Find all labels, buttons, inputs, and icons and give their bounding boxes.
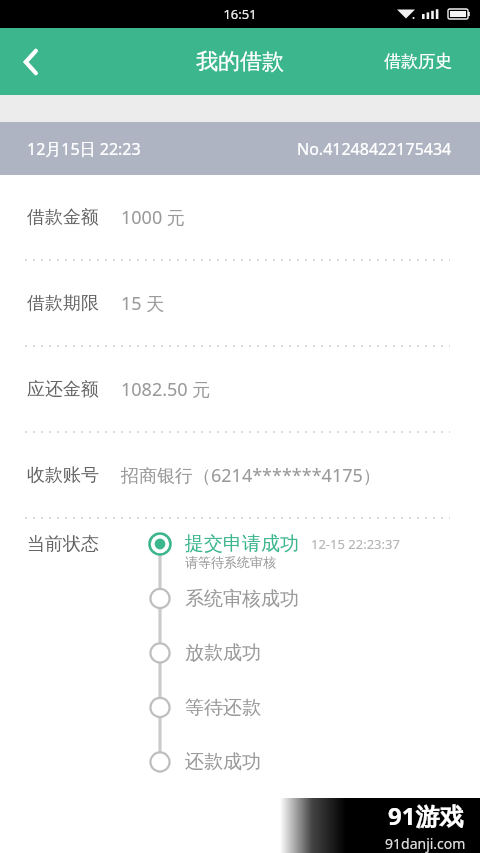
button[interactable]: 借款期限 xyxy=(0,261,480,347)
staticText: 1082.50 元 xyxy=(121,377,211,402)
staticText: 等待还款 xyxy=(185,696,261,720)
staticText: 请等待系统审核 xyxy=(185,554,276,570)
staticText: No.41248422175434 xyxy=(297,138,452,160)
button[interactable]: 系统审核成功 xyxy=(185,584,299,614)
staticText: 放款成功 xyxy=(185,641,261,665)
button[interactable]: 应还金额 xyxy=(0,347,480,433)
staticText: 16:51 xyxy=(223,5,257,23)
button[interactable]: Back xyxy=(0,28,62,95)
staticText: 提交申请成功 xyxy=(185,532,299,556)
staticText: 借款金额 xyxy=(27,206,99,229)
button[interactable]: 还款成功 xyxy=(185,747,261,777)
staticText: 12月15日 22:23 xyxy=(27,138,141,160)
staticText: 15 天 xyxy=(121,291,165,316)
button[interactable]: 借款金额 xyxy=(0,175,480,261)
staticText: 91游戏 xyxy=(388,799,464,832)
staticText: 1000 元 xyxy=(121,205,185,230)
staticText: 招商银行（6214*******4175） xyxy=(121,463,381,488)
staticText: 借款期限 xyxy=(27,292,99,315)
staticText: 还款成功 xyxy=(185,750,261,774)
button[interactable]: 借款历史 xyxy=(356,28,480,95)
staticText: 我的借款 xyxy=(196,48,284,76)
staticText: 12-15 22:23:37 xyxy=(311,535,400,553)
button[interactable]: 提交申请成功 xyxy=(185,529,400,559)
button[interactable]: 收款账号 xyxy=(0,433,480,519)
staticText: 当前状态 xyxy=(27,533,99,556)
button[interactable]: 等待还款 xyxy=(185,693,261,723)
staticText: 系统审核成功 xyxy=(185,587,299,611)
button[interactable]: 放款成功 xyxy=(185,638,261,668)
staticText: 收款账号 xyxy=(27,464,99,487)
staticText: 应还金额 xyxy=(27,378,99,401)
staticText: 91danji.com xyxy=(385,834,466,853)
staticText: 借款历史 xyxy=(384,51,452,72)
